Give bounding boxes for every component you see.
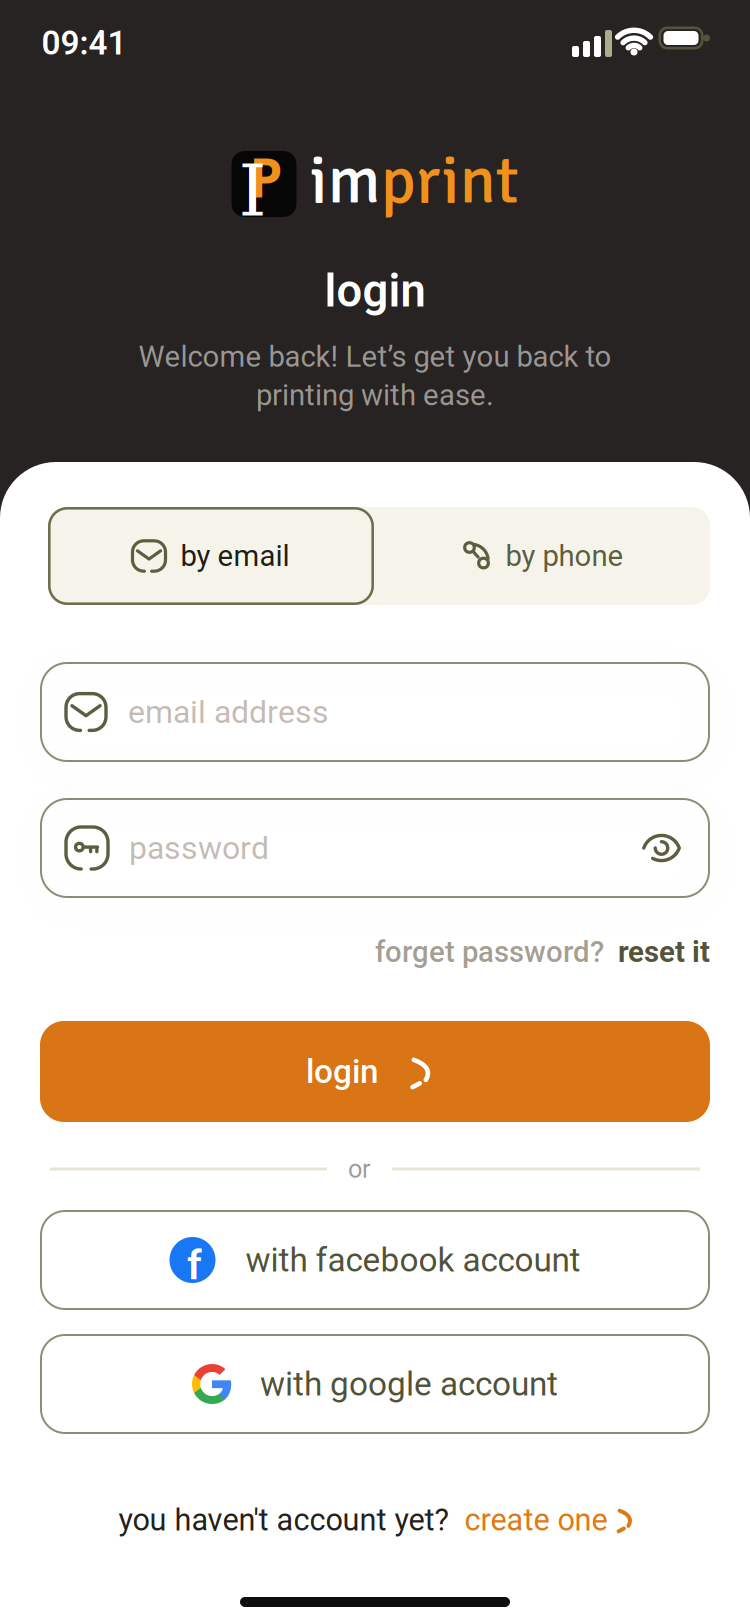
staticText: f (187, 1241, 202, 1289)
staticText: email address (128, 694, 329, 730)
staticText: you haven't account yet? (118, 1502, 448, 1537)
button[interactable]: with google account (40, 1334, 710, 1434)
button[interactable]: create one (464, 1502, 631, 1537)
button[interactable]: by phone (374, 507, 710, 605)
staticText: login (306, 1052, 379, 1091)
staticText: I (238, 150, 266, 232)
staticText: print (380, 140, 518, 222)
button[interactable]: by email (48, 507, 374, 605)
staticText: password (129, 830, 269, 866)
staticText: 09:41 (41, 24, 126, 62)
staticText: by phone (505, 539, 623, 573)
staticText: printing with ease. (256, 378, 494, 412)
button[interactable]: f (40, 1210, 710, 1310)
button[interactable]: Show password (633, 821, 690, 875)
button[interactable]: login (40, 1021, 710, 1122)
staticText: login (324, 265, 425, 317)
staticText: create one (464, 1502, 607, 1537)
staticText: im (309, 140, 380, 222)
staticText: with google account (260, 1365, 558, 1403)
staticText: with facebook account (245, 1241, 580, 1279)
staticText: by email (180, 539, 289, 573)
staticText: or (348, 1154, 371, 1183)
staticText: P (249, 141, 282, 213)
staticText: reset it (618, 935, 710, 969)
button[interactable]: reset it (618, 935, 710, 969)
staticText: Welcome back! Let’s get you back to (138, 340, 611, 373)
staticText: forget password? (375, 935, 604, 969)
